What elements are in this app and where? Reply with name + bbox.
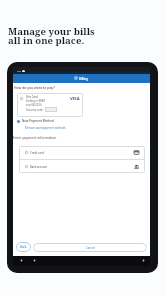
staticText: VISA	[70, 96, 80, 102]
staticText: exp 04/2024	[26, 103, 42, 107]
other: Bank account	[134, 164, 139, 169]
button[interactable]: Credit card	[25, 146, 139, 159]
staticText: Manage your bills	[8, 25, 95, 38]
button[interactable]: Cancel	[33, 243, 147, 252]
other: Home	[33, 259, 36, 262]
other: Credit card	[134, 150, 139, 155]
staticText: Billing	[79, 77, 88, 81]
staticText: Credit card	[30, 151, 44, 155]
staticText: New Payment Method	[22, 119, 54, 123]
button[interactable]: Bank account	[25, 160, 139, 173]
other: Back	[20, 259, 23, 262]
staticText: Visa Card	[26, 95, 38, 99]
staticText: Cancel	[86, 246, 95, 250]
button[interactable]: New Payment Method	[17, 119, 54, 123]
staticText: Security code	[26, 108, 43, 112]
staticText: Back	[20, 245, 27, 249]
staticText: How do you want to pay?	[14, 85, 55, 90]
button[interactable]: Remove saved payment methods	[25, 126, 66, 130]
staticText: Enter payment information	[13, 135, 57, 140]
other: Notifications	[142, 259, 145, 262]
button[interactable]: Back	[16, 242, 31, 252]
button[interactable]: Visa Card	[17, 93, 83, 117]
staticText: Bank account	[30, 165, 48, 169]
staticText: Ending in 8888	[26, 99, 45, 103]
staticText: all in one place.	[8, 34, 85, 47]
